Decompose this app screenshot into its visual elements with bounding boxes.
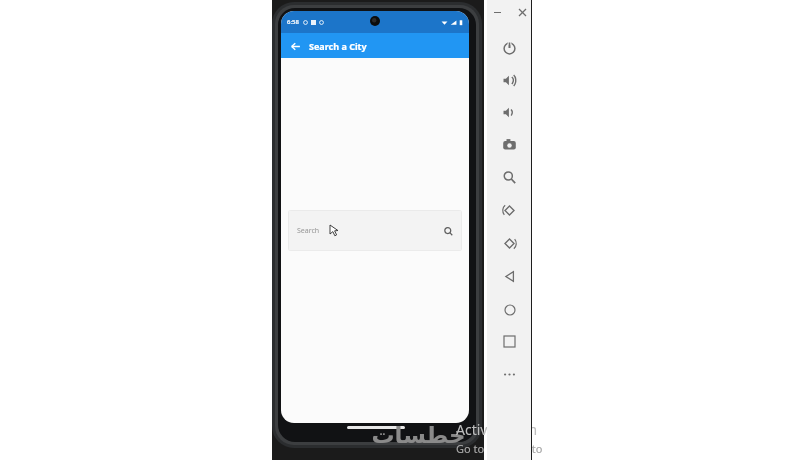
staticText: Go to Settings to xyxy=(456,441,543,456)
staticText: Search xyxy=(297,226,320,236)
button[interactable]: Zoom xyxy=(498,166,521,189)
staticText: Activate Win xyxy=(456,420,538,439)
button[interactable]: Rotate right xyxy=(498,232,521,255)
button[interactable]: Close xyxy=(516,6,529,19)
button[interactable]: More xyxy=(498,363,521,386)
staticText: 6:58 xyxy=(287,18,299,26)
button[interactable]: Back xyxy=(285,36,305,56)
button[interactable]: Volume up xyxy=(498,69,521,92)
button[interactable]: Recent apps xyxy=(498,330,521,353)
button[interactable]: Home xyxy=(498,298,521,321)
button[interactable]: Volume down xyxy=(498,101,521,124)
button[interactable]: Rotate left xyxy=(498,199,521,222)
button[interactable]: Take screenshot xyxy=(498,133,521,156)
staticText: خطسات xyxy=(371,422,466,449)
button[interactable]: Power xyxy=(498,37,521,60)
button[interactable]: Search xyxy=(288,210,462,251)
button[interactable]: Back xyxy=(498,265,521,288)
button[interactable]: Minimize xyxy=(491,6,504,19)
button[interactable]: Search xyxy=(441,224,455,238)
staticText: Search a City xyxy=(309,40,367,52)
